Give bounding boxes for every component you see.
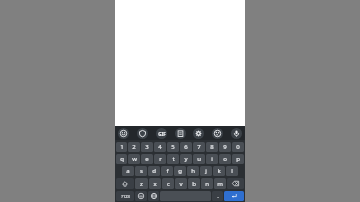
staticText: a: [126, 167, 130, 175]
button[interactable]: Enter: [224, 191, 244, 201]
staticText: v: [179, 180, 183, 188]
button[interactable]: 0: [232, 142, 244, 152]
staticText: x: [153, 180, 157, 188]
staticText: 1: [120, 143, 124, 151]
button[interactable]: Emoji: [118, 128, 129, 139]
staticText: z: [140, 180, 143, 188]
staticText: p: [236, 155, 240, 163]
button[interactable]: 5: [167, 142, 179, 152]
button[interactable]: .: [212, 191, 223, 201]
button[interactable]: r: [154, 154, 166, 164]
staticText: l: [231, 167, 233, 175]
staticText: 8: [210, 143, 214, 151]
button[interactable]: s: [135, 166, 147, 176]
staticText: g: [178, 167, 182, 175]
staticText: h: [191, 167, 195, 175]
staticText: ?123: [121, 194, 130, 199]
button[interactable]: g: [174, 166, 186, 176]
button[interactable]: 8: [206, 142, 218, 152]
button[interactable]: o: [219, 154, 231, 164]
button[interactable]: n: [201, 178, 213, 189]
button[interactable]: Emoji: [135, 191, 147, 201]
button[interactable]: b: [188, 178, 200, 189]
button[interactable]: k: [213, 166, 225, 176]
staticText: c: [167, 180, 170, 188]
button[interactable]: Shift: [116, 178, 134, 189]
button[interactable]: Voice input: [231, 128, 242, 139]
button[interactable]: Stickers: [137, 128, 148, 139]
button[interactable]: 2: [128, 142, 140, 152]
button[interactable]: j: [200, 166, 212, 176]
staticText: 5: [171, 143, 175, 151]
button[interactable]: 6: [180, 142, 192, 152]
staticText: o: [223, 155, 227, 163]
button[interactable]: f: [161, 166, 173, 176]
button[interactable]: i: [206, 154, 218, 164]
staticText: i: [211, 155, 213, 163]
staticText: n: [205, 180, 209, 188]
button[interactable]: m: [214, 178, 226, 189]
button[interactable]: z: [135, 178, 148, 189]
staticText: s: [140, 167, 143, 175]
button[interactable]: 4: [154, 142, 166, 152]
button[interactable]: u: [193, 154, 205, 164]
button[interactable]: x: [149, 178, 161, 189]
staticText: 2: [132, 143, 136, 151]
button[interactable]: 3: [141, 142, 153, 152]
staticText: r: [159, 155, 162, 163]
staticText: 4: [158, 143, 162, 151]
button[interactable]: Themes: [212, 128, 223, 139]
button[interactable]: v: [175, 178, 187, 189]
staticText: e: [145, 155, 149, 163]
staticText: m: [217, 180, 223, 188]
button[interactable]: c: [162, 178, 174, 189]
staticText: b: [192, 180, 196, 188]
button[interactable]: Backspace: [227, 178, 244, 189]
staticText: y: [184, 155, 188, 163]
staticText: k: [217, 167, 221, 175]
button[interactable]: l: [226, 166, 238, 176]
button[interactable]: Clipboard: [175, 128, 186, 139]
staticText: 9: [223, 143, 227, 151]
button[interactable]: d: [148, 166, 160, 176]
staticText: .: [217, 192, 219, 200]
staticText: t: [172, 155, 175, 163]
staticText: 3: [145, 143, 149, 151]
button[interactable]: e: [141, 154, 153, 164]
button[interactable]: w: [128, 154, 140, 164]
button[interactable]: 9: [219, 142, 231, 152]
button[interactable]: t: [167, 154, 179, 164]
button[interactable]: y: [180, 154, 192, 164]
staticText: 0: [236, 143, 240, 151]
staticText: 6: [184, 143, 188, 151]
button[interactable]: Settings: [193, 128, 204, 139]
button[interactable]: h: [187, 166, 199, 176]
button[interactable]: Language: [148, 191, 159, 201]
staticText: d: [152, 167, 156, 175]
button[interactable]: p: [232, 154, 244, 164]
staticText: GIF: [158, 131, 166, 137]
button[interactable]: GIF: [156, 128, 167, 139]
staticText: q: [120, 155, 124, 163]
button[interactable]: 1: [116, 142, 127, 152]
staticText: w: [132, 155, 137, 163]
button[interactable]: ?123: [116, 191, 134, 201]
staticText: 7: [197, 143, 201, 151]
staticText: j: [205, 167, 207, 175]
staticText: u: [197, 155, 201, 163]
button[interactable]: 7: [193, 142, 205, 152]
button[interactable]: q: [116, 154, 127, 164]
staticText: f: [166, 167, 169, 175]
button[interactable]: a: [122, 166, 134, 176]
